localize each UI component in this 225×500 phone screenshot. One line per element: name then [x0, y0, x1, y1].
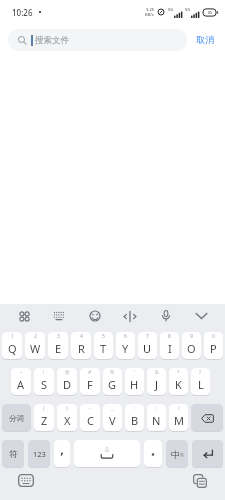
button[interactable]: ) — [57, 404, 77, 432]
staticText: L — [198, 377, 204, 392]
button[interactable]: 3 — [48, 332, 68, 360]
staticText: 6 — [124, 333, 127, 340]
staticText: I — [168, 341, 172, 356]
button[interactable]: # — [80, 368, 100, 396]
staticText: Z — [41, 413, 48, 428]
button[interactable]: % — [103, 368, 122, 396]
button[interactable]: 7 — [138, 332, 157, 360]
button[interactable]: 符 — [2, 440, 24, 468]
button[interactable]: ~ — [11, 368, 31, 396]
staticText: Y — [122, 341, 129, 356]
button[interactable]: 6 — [116, 332, 135, 360]
button[interactable]: ! — [34, 368, 54, 396]
button[interactable]: ( — [34, 404, 54, 432]
button[interactable] — [118, 305, 142, 327]
staticText: J — [155, 377, 159, 392]
button[interactable]: / — [169, 404, 188, 432]
button[interactable] — [54, 440, 70, 468]
staticText: % — [110, 369, 115, 376]
staticText: 符 — [9, 449, 18, 460]
button[interactable] — [12, 305, 36, 327]
staticText: V — [109, 413, 116, 428]
staticText: 取消 — [196, 34, 214, 45]
button[interactable] — [83, 305, 107, 327]
staticText: K — [175, 377, 182, 392]
button[interactable] — [47, 305, 71, 327]
button[interactable]: 中 — [166, 440, 188, 468]
button[interactable] — [14, 472, 38, 489]
staticText: 5 — [102, 333, 105, 340]
button[interactable]: 分词 — [2, 404, 31, 432]
staticText: 7 — [146, 333, 149, 340]
button[interactable]: & — [147, 368, 166, 396]
button[interactable]: 8 — [160, 332, 179, 360]
button[interactable]: : — [125, 404, 144, 432]
staticText: R — [78, 341, 85, 356]
staticText: 中 — [171, 449, 180, 460]
staticText: ~ — [20, 369, 23, 376]
button[interactable]: - — [80, 404, 100, 432]
staticText: A — [17, 377, 25, 392]
button[interactable]: 0 — [204, 332, 223, 360]
staticText: 分词 — [9, 414, 24, 423]
staticText: _ — [111, 405, 114, 412]
staticText: 英 — [180, 452, 184, 457]
staticText: 3.25 — [146, 7, 154, 12]
staticText: / — [178, 405, 180, 412]
staticText: N — [152, 413, 161, 428]
button[interactable]: 取消 — [196, 34, 214, 45]
button[interactable]: 搜索文件 — [8, 29, 187, 51]
staticText: 4 — [80, 333, 83, 340]
staticText: - — [89, 405, 91, 412]
button[interactable]: @ — [57, 368, 77, 396]
button[interactable]: 123 — [28, 440, 50, 468]
button[interactable]: 5 — [94, 332, 113, 360]
staticText: @ — [65, 369, 70, 376]
staticText: 3 — [57, 333, 60, 340]
staticText: D — [63, 377, 72, 392]
staticText: H — [130, 377, 139, 392]
button[interactable]: ; — [147, 404, 166, 432]
staticText: E — [55, 341, 62, 356]
staticText: G — [108, 377, 117, 392]
button[interactable] — [192, 440, 223, 468]
button[interactable]: * — [169, 368, 188, 396]
button[interactable]: _ — [103, 404, 122, 432]
button[interactable] — [154, 305, 178, 327]
button[interactable]: 9 — [182, 332, 201, 360]
staticText: ! — [43, 369, 45, 376]
staticText: M — [174, 413, 184, 428]
button[interactable] — [188, 472, 212, 489]
staticText: U — [143, 341, 152, 356]
staticText: 123 — [33, 449, 46, 459]
staticText: ' — [134, 369, 136, 376]
staticText: P — [210, 341, 217, 356]
button[interactable]: 2 — [25, 332, 45, 360]
staticText: ) — [66, 405, 68, 412]
staticText: 85 — [208, 10, 213, 15]
staticText: T — [100, 341, 107, 356]
staticText: 5G — [185, 7, 191, 12]
staticText: F — [87, 377, 93, 392]
staticText: 2 — [34, 333, 37, 340]
button[interactable] — [144, 440, 162, 468]
staticText: 9 — [190, 333, 193, 340]
button[interactable]: 4 — [71, 332, 91, 360]
staticText: Q — [8, 341, 17, 356]
staticText: * — [177, 369, 180, 376]
staticText: X — [64, 413, 71, 428]
button[interactable] — [74, 440, 140, 468]
staticText: W — [30, 341, 41, 356]
staticText: 搜索文件 — [35, 35, 69, 46]
staticText: S — [41, 377, 48, 392]
staticText: 1 — [11, 333, 14, 340]
staticText: O — [187, 341, 196, 356]
staticText: & — [155, 369, 159, 376]
button[interactable]: ' — [125, 368, 144, 396]
button[interactable]: ? — [191, 368, 210, 396]
button[interactable]: 1 — [2, 332, 22, 360]
staticText: # — [88, 369, 92, 376]
button[interactable] — [189, 305, 213, 327]
staticText: : — [134, 405, 136, 412]
button[interactable] — [191, 404, 223, 432]
